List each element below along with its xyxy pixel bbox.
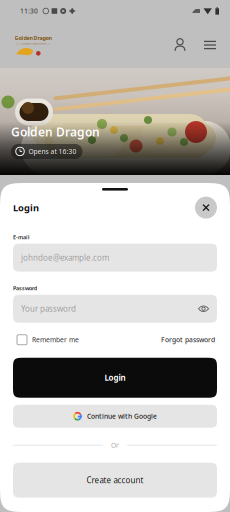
staticText: Or: [111, 441, 119, 450]
staticText: johndoe@example.com: [21, 252, 109, 263]
staticText: Opens at 16:30: [28, 147, 76, 156]
button[interactable]: Continue with Google: [13, 405, 217, 428]
staticText: Create account: [86, 475, 143, 485]
staticText: Password: [13, 285, 37, 292]
staticText: — CHINESE RESTAURANT —: [15, 42, 50, 45]
staticText: 11:30: [20, 7, 38, 15]
button[interactable]: Menu: [198, 33, 222, 57]
staticText: Golden Dragon: [14, 34, 51, 41]
staticText: Continue with Google: [87, 412, 157, 421]
staticText: Golden Dragon: [11, 124, 100, 140]
button[interactable]: Login: [13, 358, 217, 398]
button[interactable]: Forgot password: [161, 335, 215, 344]
button[interactable]: Account: [168, 33, 192, 57]
staticText: Remember me: [32, 335, 79, 344]
staticText: Your password: [21, 303, 76, 314]
staticText: Forgot password: [161, 335, 215, 344]
staticText: Login: [104, 372, 125, 383]
button[interactable]: Remember me: [17, 335, 79, 345]
staticText: E-mail: [13, 234, 30, 241]
staticText: Login: [13, 201, 39, 214]
button[interactable]: Create account: [13, 463, 217, 498]
button[interactable]: Close: [195, 197, 217, 219]
